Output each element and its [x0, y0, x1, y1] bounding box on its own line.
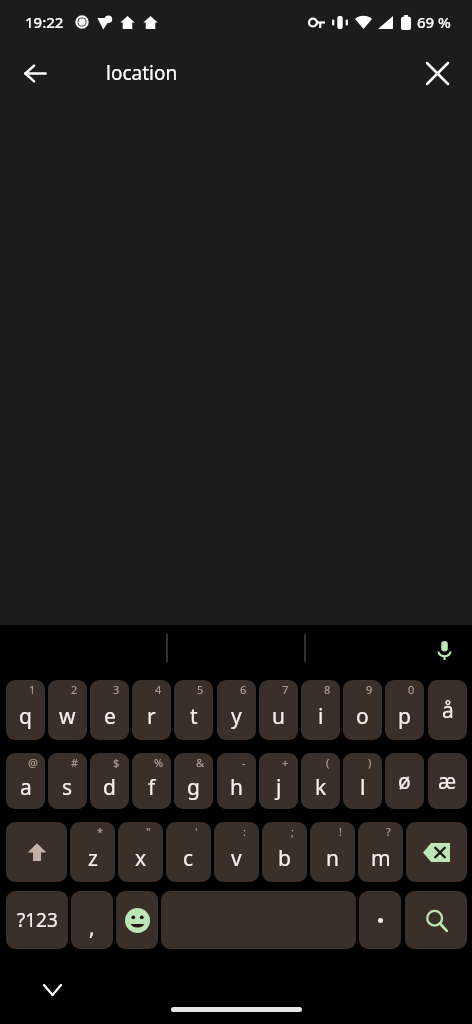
- staticText: -: [242, 755, 246, 770]
- staticText: ': [195, 824, 198, 839]
- staticText: a: [20, 773, 32, 802]
- staticText: %: [154, 755, 164, 770]
- staticText: q: [19, 702, 32, 731]
- staticText: r: [147, 702, 156, 731]
- button[interactable]: ": [118, 822, 163, 882]
- staticText: ?123: [17, 907, 58, 933]
- button[interactable]: #: [48, 753, 87, 809]
- button[interactable]: Period: [359, 891, 401, 949]
- button[interactable]: 5: [174, 680, 213, 740]
- button[interactable]: Search: [405, 891, 467, 949]
- button[interactable]: Back: [11, 49, 59, 97]
- staticText: m: [371, 844, 391, 873]
- staticText: u: [272, 702, 285, 731]
- staticText: @: [28, 755, 38, 770]
- staticText: æ: [438, 767, 457, 796]
- staticText: w: [59, 702, 76, 731]
- button[interactable]: Shift: [6, 822, 67, 882]
- staticText: $: [113, 755, 120, 770]
- staticText: ?: [386, 824, 391, 839]
- button[interactable]: $: [90, 753, 129, 809]
- staticText: 19:22: [25, 12, 64, 32]
- staticText: 7: [282, 682, 289, 697]
- button[interactable]: Clear: [413, 49, 461, 97]
- staticText: j: [276, 773, 282, 802]
- staticText: 2: [71, 682, 78, 697]
- button[interactable]: ': [166, 822, 211, 882]
- staticText: 3: [113, 682, 120, 697]
- button[interactable]: Voice input: [424, 630, 464, 670]
- staticText: ": [146, 824, 151, 839]
- staticText: o: [356, 702, 369, 731]
- button[interactable]: +: [259, 753, 298, 809]
- button[interactable]: ?: [358, 822, 403, 882]
- button[interactable]: -: [217, 753, 256, 809]
- staticText: å: [442, 696, 454, 725]
- staticText: 8: [324, 682, 331, 697]
- button[interactable]: @: [6, 753, 45, 809]
- button[interactable]: Comma: [71, 891, 113, 949]
- staticText: 4: [155, 682, 162, 697]
- button[interactable]: ;: [262, 822, 307, 882]
- button[interactable]: 7: [259, 680, 298, 740]
- button[interactable]: 3: [90, 680, 129, 740]
- staticText: 1: [29, 682, 36, 697]
- staticText: 5: [197, 682, 204, 697]
- staticText: ,: [89, 913, 95, 942]
- button[interactable]: ): [343, 753, 382, 809]
- staticText: b: [278, 844, 291, 873]
- button[interactable]: 8: [301, 680, 340, 740]
- staticText: 6: [240, 682, 247, 697]
- staticText: +: [282, 755, 289, 770]
- staticText: e: [104, 702, 116, 731]
- button[interactable]: 2: [48, 680, 87, 740]
- button[interactable]: 4: [132, 680, 171, 740]
- staticText: i: [318, 702, 324, 731]
- button[interactable]: æ: [428, 753, 467, 809]
- staticText: n: [326, 844, 339, 873]
- staticText: *: [97, 824, 104, 839]
- button[interactable]: ?123: [6, 891, 68, 949]
- button[interactable]: !: [310, 822, 355, 882]
- staticText: 9: [366, 682, 373, 697]
- staticText: l: [360, 773, 366, 802]
- staticText: f: [148, 773, 156, 802]
- staticText: &: [196, 755, 205, 770]
- staticText: g: [187, 773, 200, 802]
- button[interactable]: 1: [6, 680, 45, 740]
- button[interactable]: Backspace: [406, 822, 467, 882]
- button[interactable]: 6: [217, 680, 256, 740]
- staticText: :: [243, 824, 246, 839]
- button[interactable]: Hide keyboard: [33, 971, 71, 1009]
- staticText: y: [231, 702, 242, 731]
- button[interactable]: *: [70, 822, 115, 882]
- button[interactable]: (: [301, 753, 340, 809]
- button[interactable]: :: [214, 822, 259, 882]
- staticText: d: [103, 773, 116, 802]
- button[interactable]: 0: [385, 680, 424, 740]
- staticText: !: [339, 824, 342, 839]
- staticText: 69 %: [417, 12, 451, 32]
- staticText: z: [88, 844, 98, 873]
- button[interactable]: ø: [385, 753, 424, 809]
- staticText: t: [190, 702, 198, 731]
- button[interactable]: å: [428, 680, 467, 740]
- staticText: v: [231, 844, 242, 873]
- button[interactable]: Emoji: [116, 891, 158, 949]
- staticText: #: [71, 755, 79, 770]
- button[interactable]: 9: [343, 680, 382, 740]
- staticText: c: [183, 844, 194, 873]
- staticText: 0: [408, 682, 415, 697]
- staticText: h: [230, 773, 243, 802]
- staticText: ;: [291, 824, 294, 839]
- button[interactable]: Space: [161, 891, 356, 949]
- button[interactable]: &: [174, 753, 213, 809]
- staticText: location: [106, 60, 178, 86]
- staticText: p: [398, 702, 411, 731]
- button[interactable]: %: [132, 753, 171, 809]
- staticText: (: [326, 755, 330, 770]
- staticText: s: [62, 773, 73, 802]
- staticText: k: [315, 773, 327, 802]
- staticText: ): [368, 755, 372, 770]
- staticText: ø: [398, 767, 411, 796]
